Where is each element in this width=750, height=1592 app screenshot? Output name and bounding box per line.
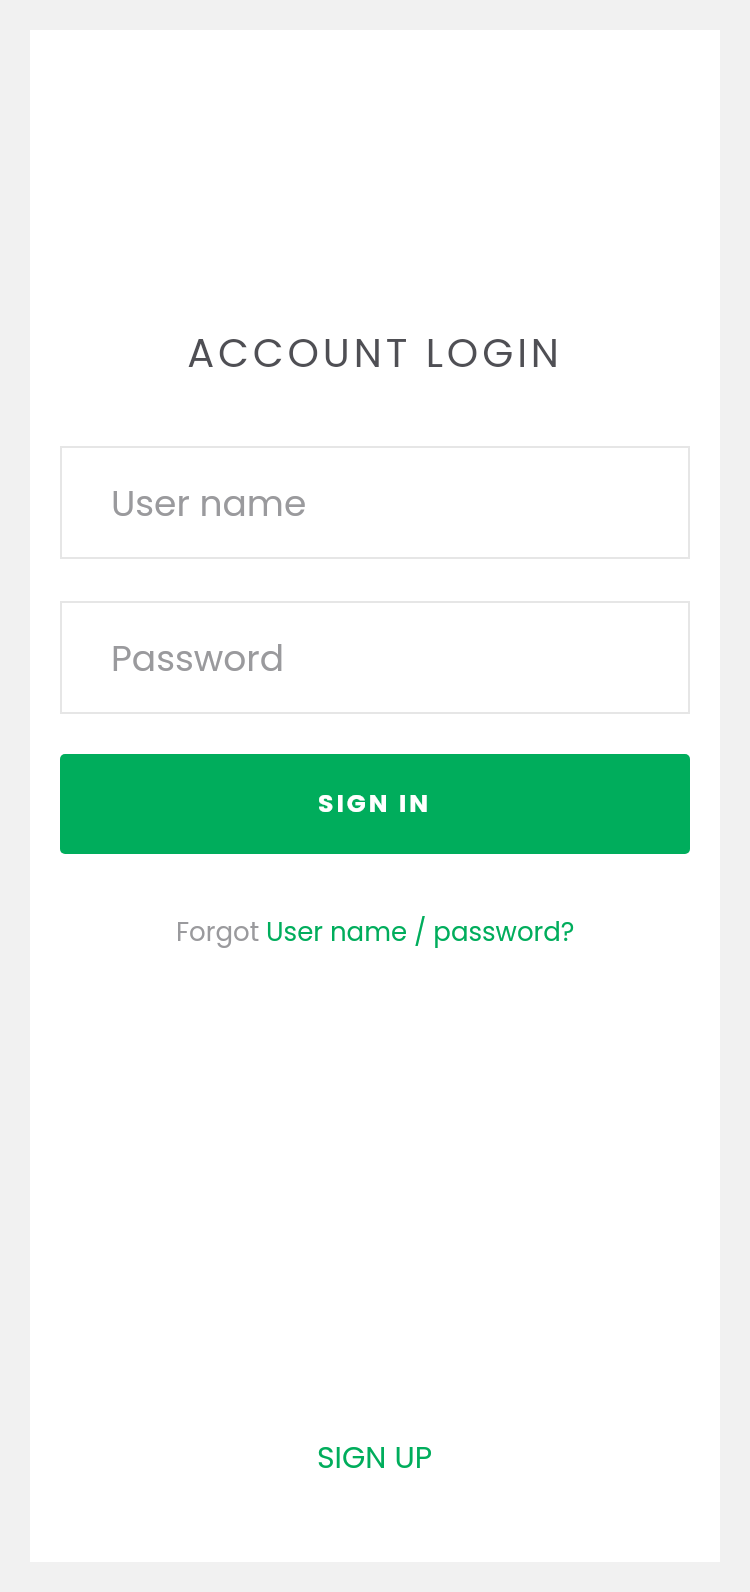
button[interactable]: Forgot User name / password? xyxy=(174,914,577,950)
button[interactable]: Password xyxy=(60,601,690,714)
staticText: SIGN UP xyxy=(317,1437,433,1479)
button[interactable]: SIGN IN xyxy=(60,754,690,854)
staticText: User name xyxy=(111,478,307,528)
staticText: SIGN IN xyxy=(318,786,432,821)
button[interactable]: User name xyxy=(60,446,690,559)
staticText: Forgot User name / password? xyxy=(176,914,575,950)
staticText: ACCOUNT LOGIN xyxy=(30,325,720,381)
staticText: Password xyxy=(111,633,285,683)
button[interactable]: SIGN UP xyxy=(315,1437,435,1479)
